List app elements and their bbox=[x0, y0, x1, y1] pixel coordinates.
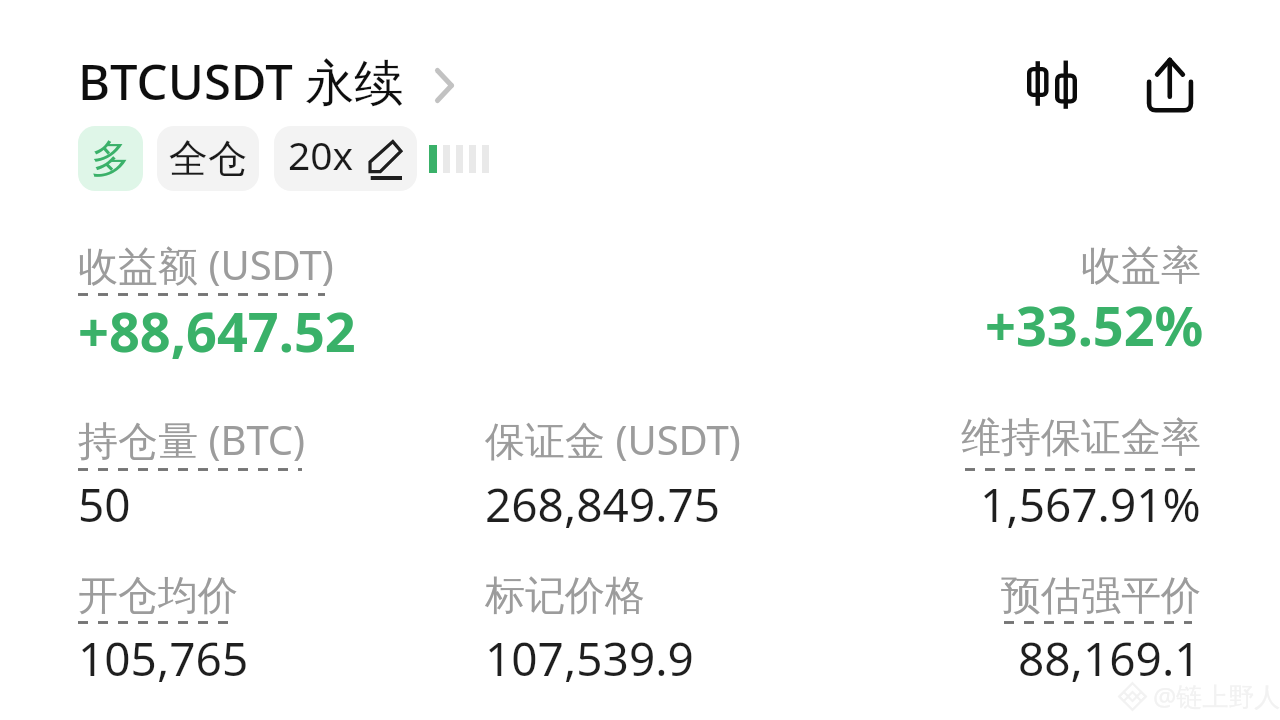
staticText: 预估强平价 bbox=[1001, 570, 1201, 620]
button[interactable]: 持仓量 (BTC) bbox=[78, 412, 306, 467]
button[interactable]: 多 bbox=[78, 126, 143, 191]
button[interactable]: 20x bbox=[274, 126, 417, 191]
staticText: 268,849.75 bbox=[485, 473, 721, 536]
staticText: BTCUSDT 永续 bbox=[78, 48, 404, 115]
button[interactable]: BTCUSDT 永续 bbox=[78, 48, 454, 115]
button[interactable]: 开仓均价 bbox=[78, 570, 238, 620]
staticText: 107,539.9 bbox=[485, 627, 694, 690]
button[interactable]: 维持保证金率 bbox=[961, 412, 1201, 462]
button[interactable]: Chart bbox=[1010, 43, 1094, 127]
staticText: +88,647.52 bbox=[78, 294, 356, 368]
staticText: 20x bbox=[288, 128, 354, 181]
staticText: 保证金 (USDT) bbox=[485, 412, 741, 467]
staticText: 开仓均价 bbox=[78, 570, 238, 620]
staticText: 标记价格 bbox=[485, 570, 645, 620]
staticText: 收益率 bbox=[1081, 240, 1201, 290]
staticText: 持仓量 (BTC) bbox=[78, 412, 306, 467]
staticText: 全仓 bbox=[169, 134, 247, 183]
staticText: 多 bbox=[91, 134, 130, 183]
staticText: 105,765 bbox=[78, 627, 249, 690]
button[interactable]: 全仓 bbox=[157, 126, 259, 191]
staticText: @链上野人 bbox=[1153, 678, 1280, 714]
button[interactable]: 收益额 (USDT) bbox=[78, 237, 334, 292]
button[interactable]: 预估强平价 bbox=[1001, 570, 1201, 620]
staticText: 1,567.91% bbox=[980, 473, 1201, 536]
staticText: 88,169.1 bbox=[1018, 627, 1201, 690]
staticText: 收益额 (USDT) bbox=[78, 237, 334, 292]
staticText: 50 bbox=[78, 473, 131, 536]
staticText: +33.52% bbox=[985, 288, 1204, 362]
button[interactable]: Share bbox=[1130, 43, 1210, 127]
staticText: 维持保证金率 bbox=[961, 412, 1201, 462]
